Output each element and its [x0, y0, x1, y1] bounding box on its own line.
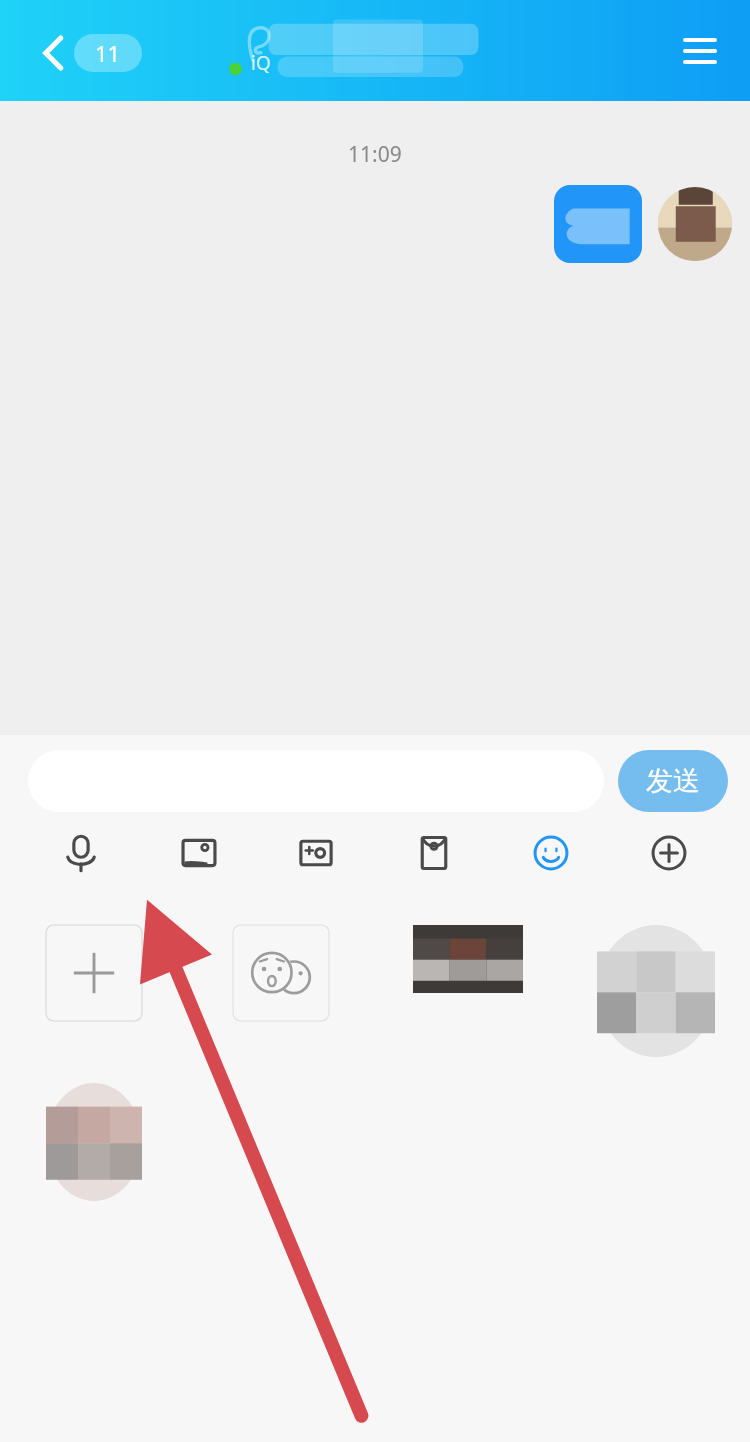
button[interactable]: Menu: [672, 23, 728, 79]
button[interactable]: Photo: [163, 824, 235, 882]
button[interactable]: Emoji pack: [233, 925, 329, 1021]
button[interactable]: Back: [26, 28, 76, 78]
button[interactable]: Add sticker: [46, 925, 142, 1021]
button[interactable]: [554, 185, 642, 263]
button[interactable]: Red packet: [398, 824, 470, 882]
button[interactable]: 11: [74, 34, 142, 72]
button[interactable]: More: [633, 824, 705, 882]
staticText: 11:09: [348, 140, 402, 169]
staticText: 11: [95, 38, 121, 68]
button[interactable]: Avatar: [658, 187, 732, 261]
button[interactable]: Emoji: [515, 824, 587, 882]
button[interactable]: Voice message: [45, 824, 117, 882]
staticText: iQ: [251, 50, 271, 76]
staticText: 发送: [646, 764, 700, 798]
button[interactable]: Sticker: [413, 925, 523, 993]
button[interactable]: Effects: [280, 824, 352, 882]
button[interactable]: Sticker: [46, 1083, 142, 1201]
button[interactable]: 发送: [618, 750, 728, 812]
button[interactable]: Sticker: [597, 925, 715, 1057]
